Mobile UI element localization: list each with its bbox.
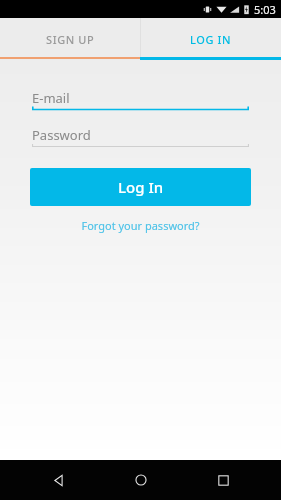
button[interactable]: Password xyxy=(32,125,249,150)
staticText: E-mail xyxy=(32,89,70,107)
staticText: Forgot your password? xyxy=(81,218,200,233)
button[interactable]: Log In xyxy=(30,168,251,206)
button[interactable]: Recent apps xyxy=(199,460,247,500)
staticText: LOG IN xyxy=(190,32,232,47)
button[interactable]: Home xyxy=(117,460,165,500)
staticText: Log In xyxy=(118,177,164,197)
staticText: Password xyxy=(32,126,91,144)
button[interactable]: LOG IN xyxy=(140,18,281,60)
staticText: 5:03 xyxy=(254,2,276,17)
button[interactable]: Back xyxy=(34,460,82,500)
button[interactable]: Forgot your password? xyxy=(73,216,208,235)
staticText: SIGN UP xyxy=(46,32,95,47)
button[interactable]: E-mail xyxy=(32,88,249,113)
button[interactable]: SIGN UP xyxy=(0,18,140,60)
